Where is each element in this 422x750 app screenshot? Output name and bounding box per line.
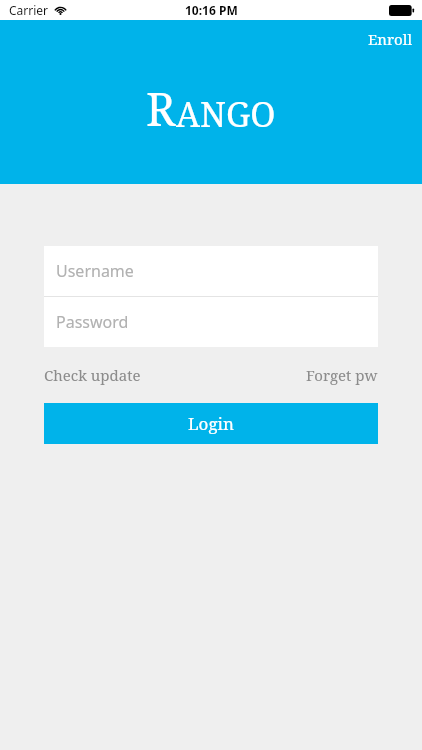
staticText: Carrier — [9, 2, 49, 18]
staticText: Username — [56, 260, 134, 282]
staticText: Login — [188, 412, 234, 435]
staticText: Check update — [44, 365, 141, 385]
button[interactable]: Check update — [44, 362, 141, 388]
staticText: Password — [56, 311, 129, 333]
button[interactable]: Password — [44, 297, 378, 347]
staticText: ANGO — [176, 91, 276, 137]
button[interactable]: Forget pw — [306, 362, 378, 388]
staticText: 10:16 PM — [185, 2, 238, 18]
button[interactable]: Username — [44, 246, 378, 296]
staticText: Forget pw — [306, 365, 378, 385]
staticText: R — [146, 78, 176, 139]
staticText: Enroll — [368, 29, 413, 49]
button[interactable]: Login — [44, 403, 378, 444]
button[interactable]: Enroll — [359, 20, 422, 58]
